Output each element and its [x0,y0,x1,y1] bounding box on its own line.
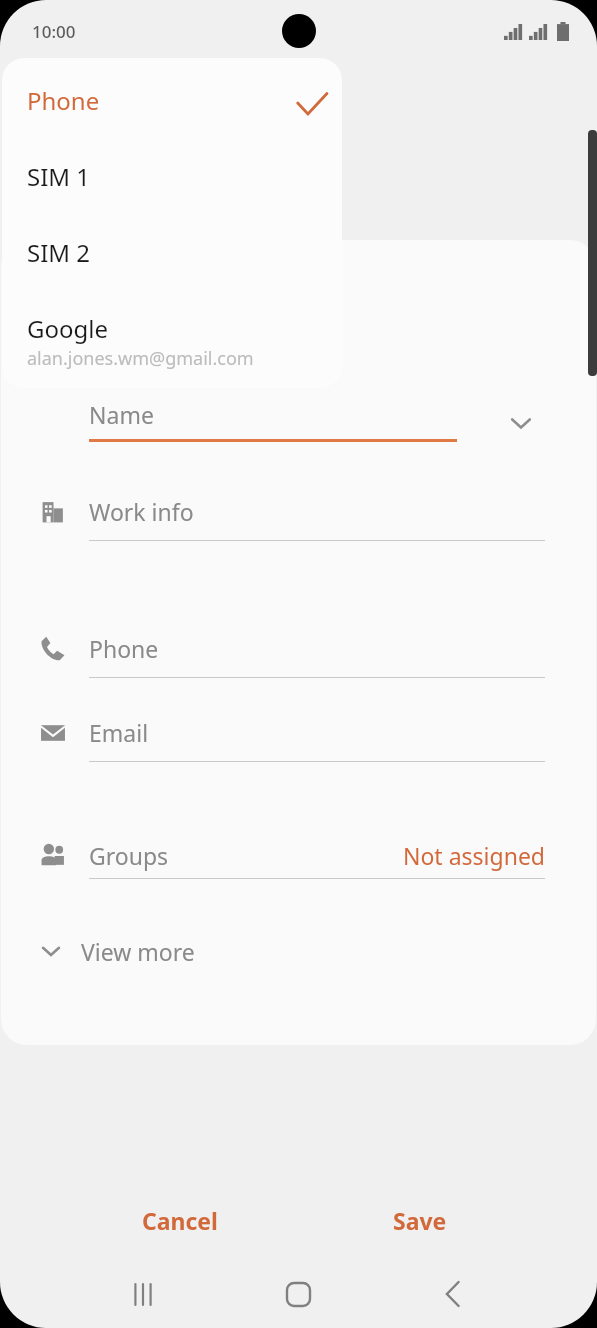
staticText: Not assigned [89,840,545,871]
button[interactable]: Phone [2,58,342,134]
button[interactable]: Groups [1,828,596,906]
staticText: Save [393,1205,447,1236]
button[interactable]: Work info [1,490,596,550]
button[interactable]: SIM 1 [2,134,342,210]
staticText: View more [81,936,195,967]
button[interactable]: Phone [1,627,596,687]
staticText: Phone [27,84,100,117]
staticText: alan.jones.wm@gmail.com [27,346,254,371]
staticText: Google [27,312,108,345]
staticText: SIM 2 [27,236,91,269]
staticText: Cancel [142,1205,218,1236]
staticText: Groups [89,840,169,871]
button[interactable]: SIM 2 [2,210,342,286]
button[interactable]: Cancel [100,1190,260,1250]
button[interactable]: Save [340,1190,500,1250]
staticText: Phone [89,633,159,664]
button[interactable]: Home [268,1268,328,1320]
staticText: Name [89,399,154,430]
staticText: Email [89,717,149,748]
button[interactable]: Back [423,1268,483,1320]
staticText: 10:00 [32,20,76,43]
button[interactable]: Google [2,286,342,388]
button[interactable]: Expand name [493,395,549,451]
button[interactable]: Email [1,711,596,771]
staticText: SIM 1 [27,160,91,193]
button[interactable]: Recent apps [113,1268,173,1320]
button[interactable]: View more [1,920,596,982]
staticText: Work info [89,496,194,527]
